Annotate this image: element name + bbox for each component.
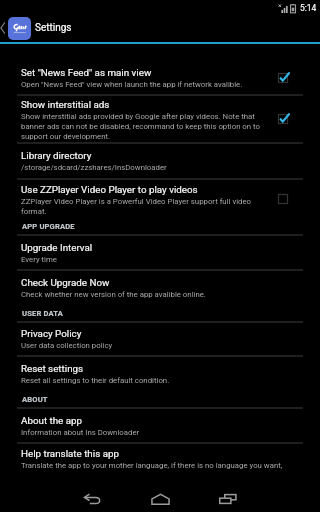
staticText: Translate the app to your mother languag… bbox=[21, 461, 283, 470]
staticText: Show interstitial ads bbox=[21, 99, 110, 110]
button[interactable]: Set "News Feed" as main view bbox=[0, 61, 320, 96]
staticText: Check Upgrade Now bbox=[21, 277, 110, 288]
staticText: Use ZZPlayer Video Player to play videos bbox=[21, 184, 198, 195]
staticText: 5:14 bbox=[300, 3, 317, 13]
button[interactable]: Back bbox=[64, 483, 120, 512]
staticText: Settings bbox=[35, 22, 72, 34]
button[interactable]: Check Upgrade Now bbox=[0, 271, 320, 305]
staticText: Upgrade Interval bbox=[21, 242, 93, 253]
staticText: Every time bbox=[21, 255, 57, 264]
staticText: About the app bbox=[21, 415, 83, 426]
button[interactable]: Help translate this app bbox=[0, 444, 320, 474]
button[interactable]: Home bbox=[132, 483, 188, 512]
button[interactable]: Navigate up bbox=[0, 16, 31, 40]
staticText: APP UPGRADE bbox=[22, 222, 75, 231]
staticText: ABOUT bbox=[22, 395, 48, 404]
button[interactable]: Library directory bbox=[0, 144, 320, 180]
button[interactable]: Reset settings bbox=[0, 357, 320, 391]
staticText: Library directory bbox=[21, 150, 92, 161]
button[interactable]: Show interstitial ads bbox=[0, 96, 320, 144]
button[interactable]: Privacy Policy bbox=[0, 323, 320, 357]
staticText: Reset settings bbox=[21, 363, 84, 374]
staticText: Check whether new version of the app ava… bbox=[21, 290, 206, 299]
button[interactable]: Recent apps bbox=[200, 483, 256, 512]
button[interactable]: About the app bbox=[0, 409, 320, 444]
staticText: Set "News Feed" as main view bbox=[21, 67, 152, 78]
staticText: Information about Ins Downloader bbox=[21, 428, 140, 437]
staticText: User data collection policy bbox=[21, 341, 113, 350]
staticText: Privacy Policy bbox=[21, 328, 82, 339]
staticText: Reset all settings to their default cond… bbox=[21, 376, 170, 385]
staticText: Help translate this app bbox=[21, 448, 119, 459]
staticText: ZZPlayer Video Player is a Powerful Vide… bbox=[21, 197, 274, 215]
button[interactable]: Upgrade Interval bbox=[0, 236, 320, 271]
staticText: /storage/sdcard/zzshares/InsDownloader bbox=[21, 163, 167, 172]
staticText: Show interstitial ads provided by Google… bbox=[21, 112, 274, 140]
staticText: Open "News Feed" view when launch the ap… bbox=[21, 80, 243, 89]
staticText: USER DATA bbox=[22, 309, 63, 318]
button[interactable]: Use ZZPlayer Video Player to play videos bbox=[0, 180, 320, 218]
